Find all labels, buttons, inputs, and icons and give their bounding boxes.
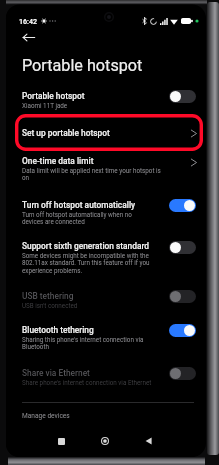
staticText: USB tethering (22, 291, 74, 301)
button[interactable]: Recent apps (50, 430, 72, 452)
button[interactable]: Open (186, 155, 200, 169)
button[interactable] (6, 287, 203, 315)
button[interactable] (6, 87, 203, 112)
button[interactable]: Home (94, 430, 116, 452)
button[interactable] (6, 363, 203, 393)
staticText: Portable hotspot (22, 91, 85, 101)
button[interactable] (6, 120, 203, 147)
button[interactable] (6, 409, 203, 429)
button[interactable]: Off (169, 241, 196, 254)
button[interactable]: Back (137, 430, 159, 452)
staticText: 16:42 (19, 17, 38, 25)
staticText: Share phone's internet connection via Et… (22, 379, 154, 386)
staticText: USB isn't connected (22, 302, 154, 309)
button[interactable]: Navigate up (17, 26, 40, 49)
button[interactable]: On (169, 199, 196, 212)
staticText: Turn off hotspot automatically (22, 200, 136, 210)
button[interactable]: Off (169, 367, 196, 380)
staticText: Portable hotspot (22, 56, 143, 75)
button[interactable]: Off (169, 90, 196, 103)
staticText: Bluetooth tethering (22, 325, 94, 335)
button[interactable] (6, 195, 203, 231)
staticText: Manage devices (22, 412, 70, 420)
button[interactable] (6, 320, 203, 357)
button[interactable] (6, 150, 203, 186)
staticText: Turn off hotspot automatically when no d… (22, 211, 154, 226)
button[interactable]: Off (169, 290, 196, 303)
button[interactable]: Open (186, 126, 200, 140)
staticText: Some devices might be incompatible with … (22, 252, 154, 275)
staticText: Share via Ethernet (22, 368, 90, 378)
staticText: Sharing this phone's internet connection… (22, 336, 154, 351)
staticText: Support sixth generation standard (22, 241, 150, 251)
staticText: Xiaomi 11T jade (22, 102, 154, 109)
staticText: One-time data limit (22, 156, 94, 166)
button[interactable] (6, 237, 203, 281)
button[interactable]: On (169, 324, 196, 337)
staticText: Data limit will be applied next time you… (22, 167, 161, 182)
staticText: Set up portable hotspot (22, 128, 110, 138)
